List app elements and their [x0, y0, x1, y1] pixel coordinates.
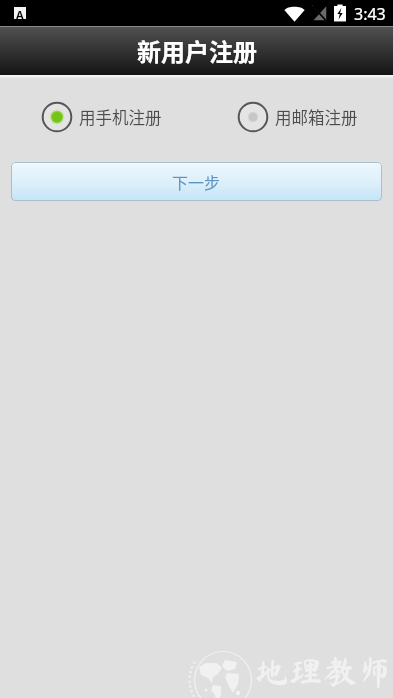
button[interactable]: 用邮箱注册: [237, 101, 358, 133]
staticText: 3:43: [354, 3, 386, 25]
staticText: 用手机注册: [79, 105, 162, 129]
staticText: 下一步: [172, 170, 221, 193]
other: Wi-Fi connected: [284, 5, 305, 22]
button[interactable]: 下一步: [11, 162, 382, 201]
other: No mobile signal: [312, 5, 327, 22]
staticText: 用邮箱注册: [275, 105, 358, 129]
staticText: 新用户注册: [137, 33, 257, 68]
staticText: A: [16, 7, 24, 19]
staticText: 地理教师: [254, 654, 392, 689]
other: App notification: [14, 7, 26, 19]
other: Battery charging: [334, 4, 346, 22]
button[interactable]: 用手机注册: [41, 101, 162, 133]
